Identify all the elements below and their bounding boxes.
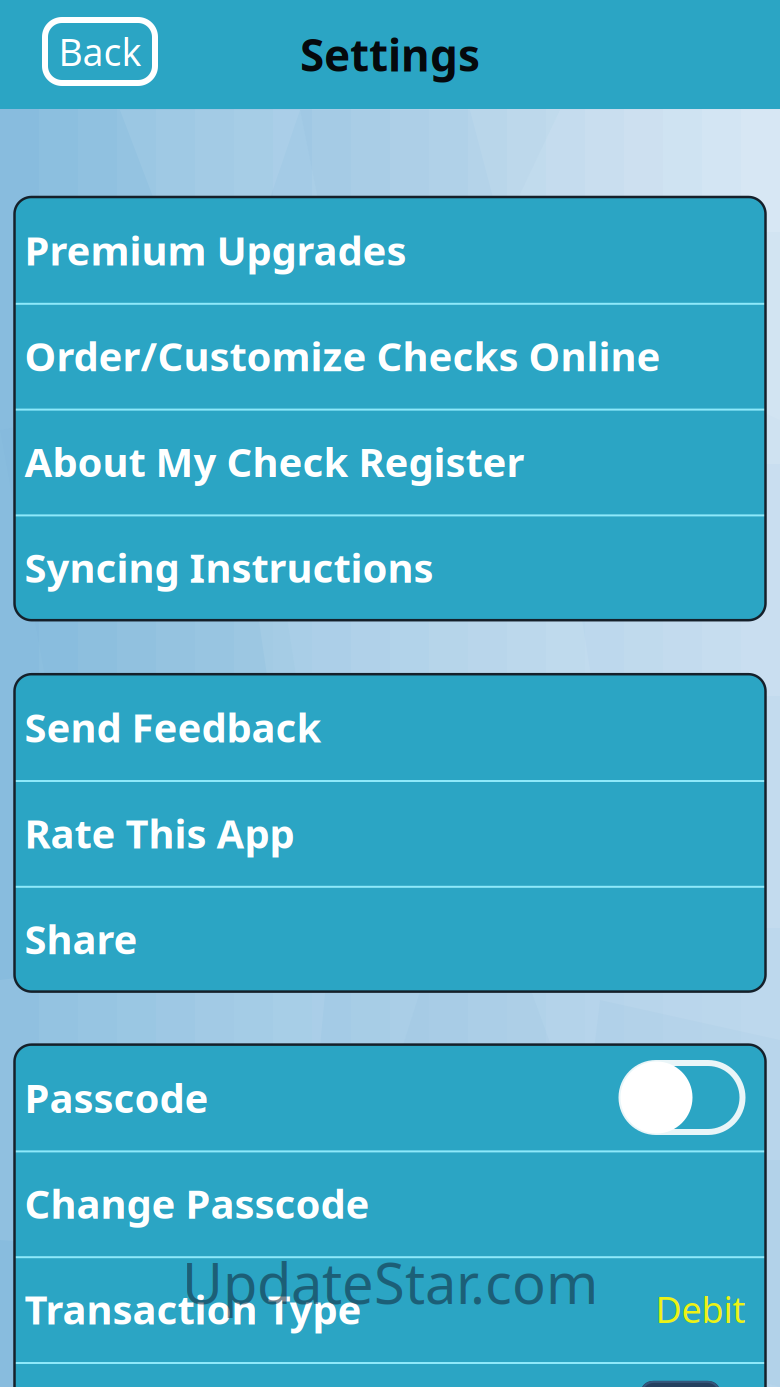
staticText: Change Passcode: [24, 1177, 369, 1230]
button[interactable]: Passcode: [14, 1045, 765, 1150]
staticText: Passcode: [24, 1071, 208, 1124]
button[interactable]: Rate This App: [14, 780, 765, 886]
button[interactable]: Order/Customize Checks Online: [14, 303, 765, 409]
staticText: UpdateStar.com: [182, 1245, 598, 1319]
staticText: Premium Upgrades: [24, 223, 406, 276]
staticText: About My Check Register: [24, 435, 524, 488]
button[interactable]: Send Feedback: [14, 674, 765, 780]
button[interactable]: Back: [42, 17, 158, 86]
staticText: Transaction Type: [24, 1282, 361, 1336]
button[interactable]: Premium Upgrades: [14, 197, 765, 303]
staticText: Order/Customize Checks Online: [24, 329, 660, 382]
button[interactable]: Syncing Instructions: [14, 514, 765, 620]
button[interactable]: Transaction Type: [14, 1256, 765, 1362]
staticText: Settings: [300, 25, 480, 84]
button[interactable]: Passcode: [618, 1060, 745, 1135]
staticText: Syncing Instructions: [24, 541, 433, 594]
staticText: Back: [58, 27, 141, 76]
button[interactable]: Edit starting balance: [640, 1381, 720, 1387]
staticText: Share: [24, 912, 137, 965]
staticText: Rate This App: [24, 806, 294, 859]
button[interactable]: Starting Balance: [14, 1362, 765, 1387]
staticText: Debit: [655, 1285, 745, 1333]
button[interactable]: About My Check Register: [14, 409, 765, 514]
button[interactable]: Change Passcode: [14, 1150, 765, 1256]
button[interactable]: Share: [14, 886, 765, 992]
staticText: Send Feedback: [24, 700, 321, 754]
